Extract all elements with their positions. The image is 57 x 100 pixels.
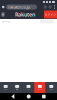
button[interactable]: カート (23, 82, 34, 93)
button[interactable]: Home (27, 94, 31, 98)
button[interactable]: Menu (0, 10, 6, 19)
staticText: rakuten.co.jp (7, 4, 29, 10)
staticText: ホーム (2, 20, 11, 23)
staticText: マイページ (37, 88, 42, 90)
staticText: Rakuten (15, 11, 35, 18)
button[interactable]: Recent apps (42, 95, 46, 98)
button[interactable]: Profile (47, 5, 52, 9)
staticText: メニュー (49, 88, 53, 90)
button[interactable]: Back (11, 94, 15, 99)
staticText: 検索 (16, 88, 18, 90)
button[interactable]: マイページ (34, 82, 46, 93)
button[interactable]: ホーム (0, 82, 11, 93)
button[interactable]: ログイン (44, 10, 57, 18)
button[interactable]: Site information (0, 6, 6, 8)
button[interactable]: 検索 (11, 82, 23, 93)
button[interactable]: More options (52, 4, 57, 10)
staticText: ログイン (44, 13, 56, 16)
staticText: カート (27, 88, 30, 90)
staticText: ホーム (4, 88, 7, 90)
button[interactable]: メニュー (46, 82, 57, 93)
button[interactable]: Tabs (43, 5, 47, 9)
